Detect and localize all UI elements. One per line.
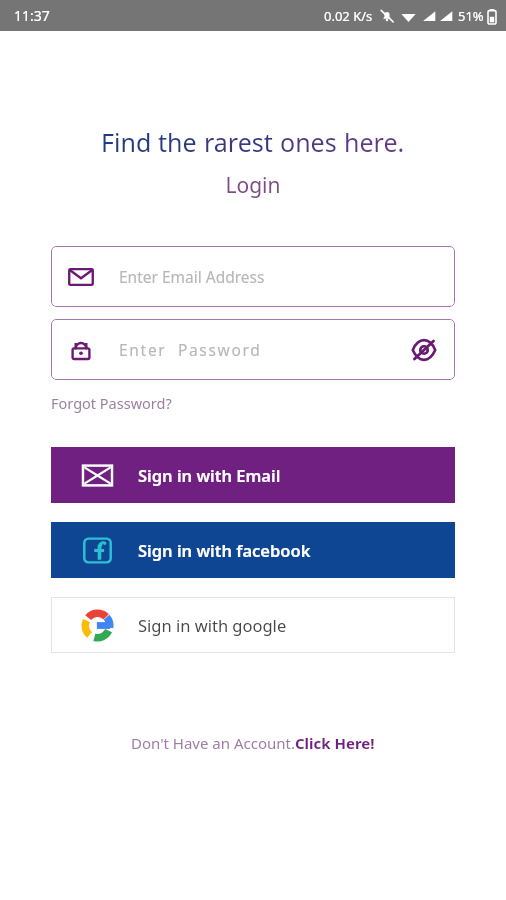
button[interactable]: Sign in with google: [51, 597, 455, 653]
button[interactable]: Email: [51, 246, 455, 307]
staticText: here.: [344, 125, 405, 159]
button[interactable]: Sign in with Email: [51, 447, 455, 503]
staticText: Sign in with google: [138, 614, 287, 636]
other: Email: [67, 263, 95, 291]
staticText: Don't Have an Account.Click Here!: [131, 733, 375, 753]
staticText: rarest: [204, 125, 280, 159]
staticText: ones: [280, 125, 344, 159]
button[interactable]: Don't Have an Account.Click Here!: [123, 729, 383, 757]
staticText: Enter Password: [119, 339, 409, 360]
staticText: Sign in with facebook: [138, 539, 311, 561]
button[interactable]: Forgot Password?: [51, 390, 172, 416]
staticText: Sign in with Email: [138, 464, 281, 486]
button[interactable]: Sign in with facebook: [51, 522, 455, 578]
staticText: 51%: [458, 7, 484, 25]
staticText: Forgot Password?: [51, 393, 172, 413]
button[interactable]: Show password: [409, 335, 439, 365]
staticText: the: [158, 125, 204, 159]
staticText: Enter Email Address: [119, 266, 439, 287]
staticText: 0.02 K/s: [324, 7, 373, 25]
button[interactable]: Password: [51, 319, 455, 380]
staticText: Login: [225, 171, 281, 200]
staticText: 11:37: [14, 6, 50, 25]
staticText: Find: [101, 125, 158, 159]
other: Password: [67, 336, 95, 364]
